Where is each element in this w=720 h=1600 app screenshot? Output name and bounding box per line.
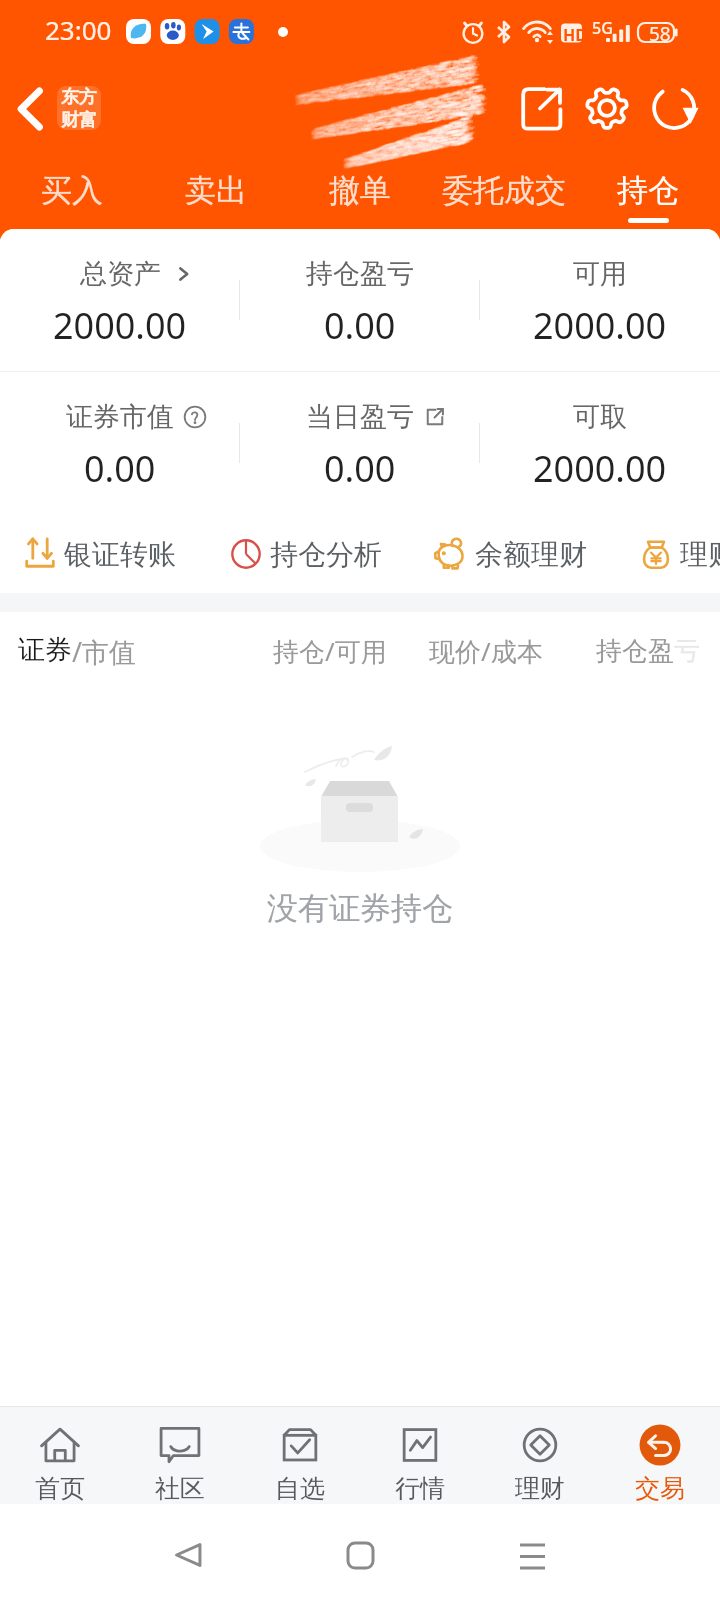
staticText: 持仓/可用 [273,633,387,669]
button[interactable]: 证券市值 [0,372,240,514]
button[interactable]: Settings [575,76,639,140]
staticText: 自选 [275,1473,325,1504]
button[interactable]: Back [148,1519,228,1591]
staticText: 现价/成本 [429,633,543,669]
staticText: 交易 [635,1473,685,1504]
button[interactable]: 持仓盈亏 [240,229,480,371]
staticText: 持仓盈 [596,635,674,668]
staticText: 总资产 [80,257,161,291]
button[interactable]: 交易 [600,1407,720,1504]
staticText: 首页 [35,1473,85,1504]
staticText: 可用 [573,257,627,291]
staticText: 社区 [155,1473,205,1504]
staticText: 当日盈亏 [306,400,414,434]
button[interactable]: 总资产 [0,229,240,371]
button[interactable]: 理财 [638,528,720,580]
staticText: 理财 [515,1473,565,1504]
staticText: HD [563,24,587,46]
staticText: 亏 [674,635,700,668]
staticText: 撤单 [329,171,391,210]
button[interactable]: 可用 [480,229,720,371]
button[interactable]: 自选 [240,1407,360,1504]
staticText: 委托成交 [442,171,566,210]
staticText: 2000.00 [533,444,667,493]
button[interactable]: 卖出 [144,150,288,229]
staticText: 58 [649,21,671,47]
button[interactable]: Back [1,72,59,146]
staticText: 持仓 [617,171,679,210]
staticText: /市值 [72,633,137,670]
button[interactable]: 银证转账 [22,528,176,580]
staticText: 证券 [18,633,72,667]
staticText: 余额理财 [475,537,587,572]
button[interactable]: 当日盈亏 [240,372,480,514]
staticText: 东方 [61,86,97,109]
button[interactable]: Share [510,76,574,140]
staticText: 5G [592,17,613,39]
button[interactable]: 社区 [120,1407,240,1504]
button[interactable]: 撤单 [288,150,432,229]
staticText: 0.00 [84,444,156,493]
staticText: 没有证券持仓 [267,889,453,928]
staticText: 银证转账 [64,537,176,572]
staticText: 行情 [395,1473,445,1504]
staticText: 23:00 [45,12,112,47]
staticText: 买入 [41,171,103,210]
staticText: 持仓分析 [270,537,382,572]
staticText: 2000.00 [533,301,667,350]
button[interactable]: Recents [492,1519,572,1591]
button[interactable]: 可取 [480,372,720,514]
staticText: 0.00 [324,301,396,350]
button[interactable]: 持仓 [576,150,720,229]
staticText: 2000.00 [53,301,187,350]
button[interactable]: Home [320,1519,400,1591]
button[interactable]: 余额理财 [433,528,587,580]
staticText: 证券市值 [66,400,174,434]
staticText: 卖出 [185,171,247,210]
button[interactable]: 买入 [0,150,144,229]
button[interactable]: 委托成交 [432,150,576,229]
staticText: 财富 [61,109,97,130]
staticText: 理财 [680,537,720,572]
button[interactable]: 持仓分析 [228,528,382,580]
button[interactable]: 东方 [57,86,101,130]
button[interactable]: 理财 [480,1407,600,1504]
button[interactable]: Refresh [646,76,710,140]
staticText: 0.00 [324,444,396,493]
staticText: 可取 [573,400,627,434]
button[interactable]: 行情 [360,1407,480,1504]
staticText: 持仓盈亏 [306,257,414,291]
button[interactable]: 首页 [0,1407,120,1504]
